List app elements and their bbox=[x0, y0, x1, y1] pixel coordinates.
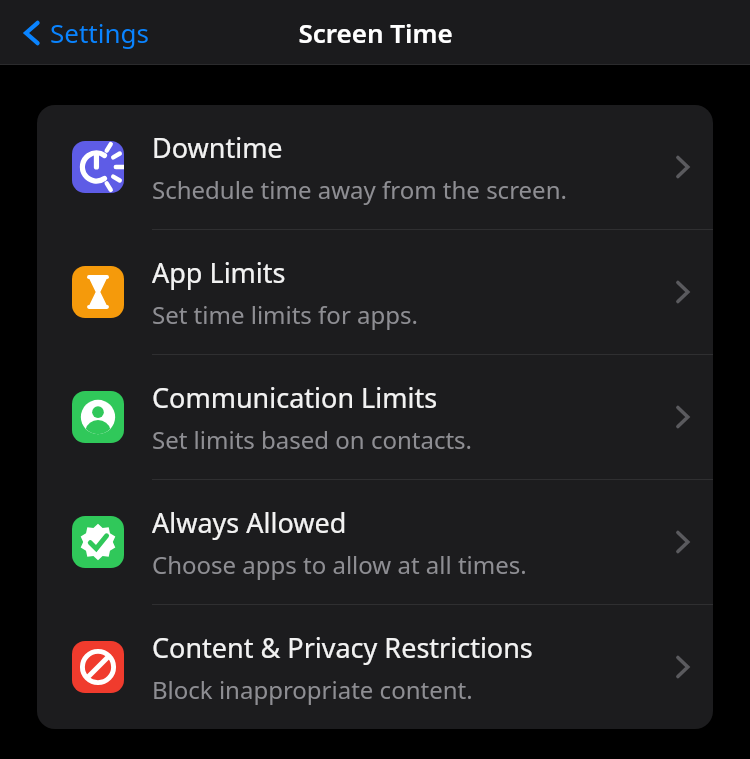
button[interactable]: icon bbox=[37, 105, 713, 229]
staticText: Schedule time away from the screen. bbox=[152, 173, 567, 206]
staticText: Block inappropriate content. bbox=[152, 673, 473, 706]
staticText: Set time limits for apps. bbox=[152, 298, 418, 331]
staticText: Always Allowed bbox=[152, 504, 347, 541]
staticText: App Limits bbox=[152, 254, 286, 291]
other: icon bbox=[72, 641, 124, 693]
button[interactable]: icon bbox=[37, 605, 713, 729]
button[interactable]: icon bbox=[37, 230, 713, 354]
staticText: Content & Privacy Restrictions bbox=[152, 629, 533, 666]
button[interactable]: Settings bbox=[16, 9, 155, 56]
staticText: Set limits based on contacts. bbox=[152, 423, 472, 456]
staticText: Screen Time bbox=[298, 15, 453, 50]
other: icon bbox=[72, 516, 124, 568]
button[interactable]: icon bbox=[37, 355, 713, 479]
other: icon bbox=[72, 266, 124, 318]
staticText: Downtime bbox=[152, 129, 283, 166]
other: icon bbox=[72, 141, 124, 193]
staticText: Settings bbox=[50, 15, 149, 50]
other: icon bbox=[72, 391, 124, 443]
staticText: Communication Limits bbox=[152, 379, 438, 416]
button[interactable]: icon bbox=[37, 480, 713, 604]
staticText: Choose apps to allow at all times. bbox=[152, 548, 527, 581]
